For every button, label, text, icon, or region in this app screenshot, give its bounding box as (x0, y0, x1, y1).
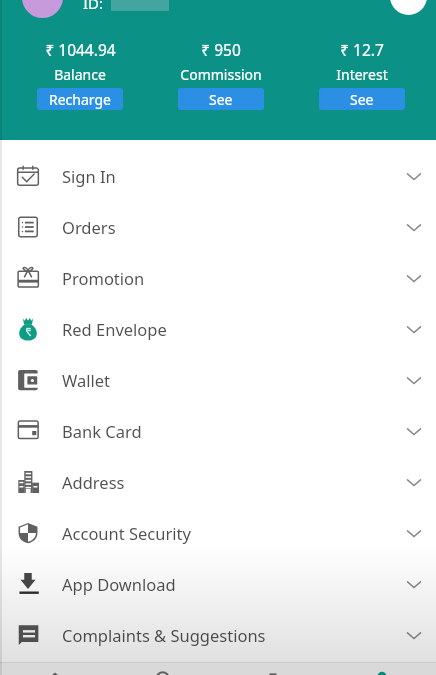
staticText: Wallet (62, 369, 111, 391)
staticText: ₹ 12.7 (340, 39, 384, 60)
staticText: Red Envelope (62, 318, 167, 340)
button[interactable]: Home (0, 663, 109, 675)
button[interactable]: Account Security (0, 507, 436, 558)
staticText: Promotion (62, 267, 145, 289)
button[interactable]: Red Envelope (0, 303, 436, 354)
button[interactable]: Address (0, 456, 436, 507)
button[interactable]: App Download (0, 558, 436, 609)
staticText: Address (62, 471, 125, 493)
staticText: Interest (336, 65, 388, 84)
staticText: Commission (180, 65, 262, 84)
staticText: Complaints & Suggestions (62, 624, 266, 646)
button[interactable]: Orders (0, 201, 436, 252)
button[interactable]: Bank Card (0, 405, 436, 456)
staticText: See (350, 90, 374, 109)
staticText: Sign In (62, 165, 116, 187)
staticText: Account Security (62, 522, 191, 544)
staticText: ₹ 950 (201, 39, 241, 60)
staticText: Balance (54, 65, 106, 84)
staticText: Recharge (49, 90, 111, 109)
staticText: App Download (62, 573, 176, 595)
button[interactable]: Complaints & Suggestions (0, 609, 436, 660)
staticText: ₹ 1044.94 (45, 39, 116, 60)
staticText: Bank Card (62, 420, 142, 442)
staticText: See (209, 90, 233, 109)
button[interactable]: See (319, 88, 405, 110)
button[interactable]: Wallet (0, 354, 436, 405)
button[interactable]: Cart (218, 663, 327, 675)
button[interactable]: Promotion (0, 252, 436, 303)
button[interactable]: Profile (327, 663, 436, 675)
button[interactable]: Profile photo (22, 0, 63, 18)
staticText: Orders (62, 216, 116, 238)
button[interactable]: See (178, 88, 264, 110)
button[interactable]: Search (109, 663, 218, 675)
button[interactable]: Settings (390, 0, 427, 15)
staticText: ID: (83, 0, 104, 13)
button[interactable]: Recharge (37, 88, 123, 110)
button[interactable]: Sign In (0, 150, 436, 201)
